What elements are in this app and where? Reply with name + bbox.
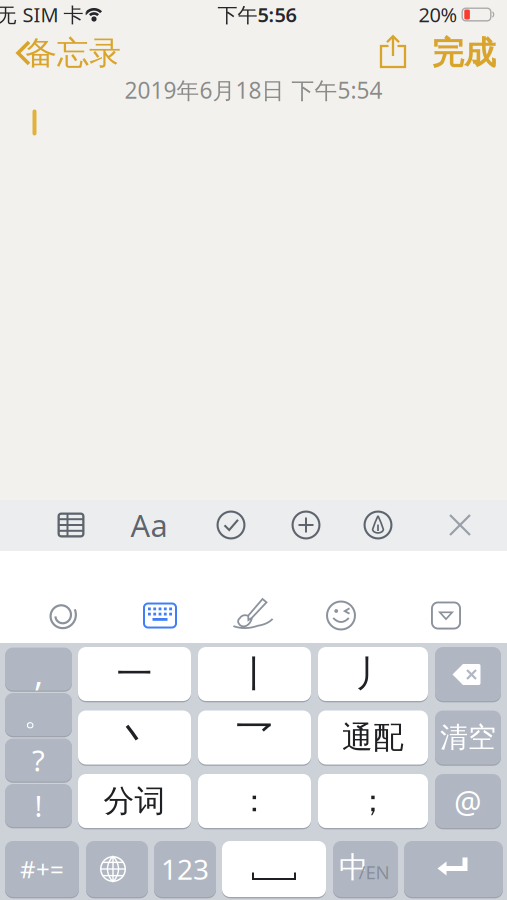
staticText: ? — [32, 740, 45, 779]
staticText: ! — [34, 786, 42, 825]
staticText: @ — [454, 781, 482, 821]
staticText: 分词 — [103, 782, 165, 820]
button[interactable]: Insert attachment — [284, 503, 328, 547]
staticText: 清空 — [440, 720, 496, 755]
staticText: /EN — [358, 860, 389, 884]
staticText: 丶 — [114, 713, 154, 762]
button[interactable]: Delete — [435, 647, 501, 701]
button[interactable]: Handwriting — [229, 593, 277, 637]
staticText: ： — [239, 782, 270, 820]
button[interactable]: 清空 — [435, 710, 501, 764]
staticText: Aa — [130, 505, 167, 545]
button[interactable]: Close toolbar — [438, 503, 482, 547]
staticText: 丿 — [355, 652, 391, 696]
button[interactable]: #+= — [5, 841, 79, 897]
staticText: 丨 — [236, 652, 272, 696]
button[interactable]: 丶 — [78, 710, 191, 764]
staticText: 下午5:56 — [217, 1, 296, 28]
button[interactable]: @ — [435, 774, 501, 828]
staticText: ； — [357, 782, 388, 820]
button[interactable]: Input mode — [40, 593, 84, 637]
button[interactable]: 备忘录 — [12, 39, 132, 67]
staticText: 。 — [24, 697, 53, 733]
button[interactable]: 丨 — [198, 647, 311, 701]
button[interactable]: Dismiss keyboard — [424, 593, 468, 637]
staticText: 123 — [161, 850, 209, 888]
button[interactable]: ! — [5, 784, 72, 827]
button[interactable]: Insert table — [49, 503, 93, 547]
button[interactable]: 一 — [78, 647, 191, 701]
staticText: 完成 — [432, 33, 496, 73]
button[interactable]: Aa — [127, 503, 171, 547]
button[interactable]: ： — [198, 774, 311, 828]
button[interactable]: Emoji — [319, 593, 363, 637]
button[interactable]: 完成 — [429, 37, 499, 69]
button[interactable]: 中 — [333, 841, 398, 897]
button[interactable]: , — [5, 647, 72, 690]
staticText: 2019年6月18日 下午5:54 — [124, 75, 382, 105]
staticText: , — [34, 650, 43, 696]
staticText: 20% — [418, 1, 457, 28]
button[interactable]: Markup — [356, 503, 400, 547]
button[interactable]: Share — [375, 34, 411, 70]
button[interactable]: Next keyboard — [86, 841, 148, 897]
button[interactable]: Checklist — [209, 503, 253, 547]
button[interactable]: 123 — [154, 841, 216, 897]
staticText: 无 SIM 卡 — [0, 1, 83, 28]
button[interactable]: Return — [404, 841, 503, 897]
button[interactable]: 丿 — [318, 647, 428, 701]
staticText: #+= — [20, 853, 64, 885]
staticText: 备忘录 — [25, 33, 121, 73]
button[interactable]: ； — [318, 774, 428, 828]
staticText: 通配 — [342, 719, 404, 756]
staticText: 中 — [339, 849, 368, 885]
button[interactable]: 。 — [5, 693, 72, 736]
button[interactable]: 分词 — [78, 774, 191, 828]
button[interactable]: Keyboard — [138, 593, 182, 637]
button[interactable]: ? — [5, 738, 72, 781]
button[interactable]: 通配 — [318, 710, 428, 764]
staticText: 乛 — [236, 715, 272, 760]
button[interactable]: Space — [222, 841, 326, 897]
staticText: 一 — [116, 652, 152, 696]
button[interactable]: 乛 — [198, 710, 311, 764]
